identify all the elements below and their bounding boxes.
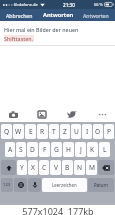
button[interactable]: L	[99, 142, 110, 157]
staticText: Hier mal ein Bilder der neuen	[4, 26, 79, 33]
button[interactable]: H	[63, 142, 74, 157]
button[interactable]: Umschalt	[1, 160, 16, 175]
staticText: Antworten	[43, 11, 74, 19]
staticText: C	[42, 163, 47, 172]
button[interactable]: Foto	[35, 107, 49, 121]
button[interactable]: U	[71, 124, 81, 139]
button[interactable]: J	[75, 142, 86, 157]
button[interactable]: Zahlen	[1, 178, 13, 192]
staticText: V	[54, 163, 58, 172]
staticText: 21:30	[63, 2, 75, 8]
button[interactable]: I	[82, 124, 92, 139]
staticText: Abbrechen	[6, 12, 33, 19]
button[interactable]: Diktieren	[28, 178, 41, 192]
staticText: Z	[63, 127, 67, 136]
button[interactable]: Antworten	[77, 9, 115, 21]
button[interactable]: O	[93, 124, 103, 139]
button[interactable]: Y	[17, 160, 27, 175]
staticText: E	[29, 127, 33, 136]
staticText: J	[80, 145, 82, 154]
staticText: O	[95, 127, 101, 136]
staticText: Return	[94, 182, 109, 188]
staticText: I	[86, 127, 89, 136]
button[interactable]: V	[50, 160, 61, 175]
button[interactable]: N	[74, 160, 85, 175]
staticText: M	[89, 163, 95, 172]
button[interactable]: Twitter	[65, 107, 79, 121]
staticText: 66 %	[94, 2, 103, 7]
staticText: D	[30, 145, 35, 154]
staticText: Leerzeichen	[52, 182, 77, 188]
staticText: W	[15, 127, 22, 136]
staticText: F	[43, 145, 47, 154]
staticText: U	[74, 127, 79, 136]
button[interactable]: B	[62, 160, 73, 175]
button[interactable]: D	[27, 142, 38, 157]
button[interactable]: C	[39, 160, 49, 175]
staticText: 123	[3, 182, 11, 188]
staticText: L	[103, 145, 107, 154]
button[interactable]: G	[51, 142, 62, 157]
staticText: A	[8, 145, 13, 154]
button[interactable]: X	[28, 160, 38, 175]
staticText: P	[107, 127, 111, 136]
staticText: K	[90, 145, 95, 154]
staticText: B	[65, 163, 70, 172]
button[interactable]: W	[13, 124, 24, 139]
button[interactable]: M	[86, 160, 97, 175]
staticText: N	[77, 163, 83, 172]
button[interactable]: Sprache	[14, 178, 27, 192]
staticText: Antworten	[83, 12, 109, 19]
staticText: Vodafone.de	[14, 2, 38, 7]
button[interactable]: Leerzeichen	[42, 178, 87, 192]
button[interactable]: Mehr	[95, 107, 109, 121]
staticText: T	[52, 127, 56, 136]
button[interactable]: T	[49, 124, 59, 139]
staticText: 577x1024 177kb	[22, 205, 94, 215]
button[interactable]: P	[104, 124, 114, 139]
button[interactable]: K	[87, 142, 98, 157]
button[interactable]: Z	[60, 124, 70, 139]
button[interactable]: Q	[1, 124, 12, 139]
staticText: Y	[20, 163, 24, 172]
button[interactable]: A	[5, 142, 15, 157]
staticText: X	[31, 163, 35, 172]
staticText: Shifttasten.	[4, 35, 34, 42]
button[interactable]: Return	[88, 178, 114, 192]
staticText: S	[19, 145, 23, 154]
button[interactable]: Abbrechen	[0, 9, 39, 21]
button[interactable]: E	[25, 124, 36, 139]
staticText: H	[66, 145, 71, 154]
button[interactable]: R	[37, 124, 48, 139]
staticText: R	[40, 127, 45, 136]
button[interactable]: Löschen	[98, 160, 114, 175]
staticText: G	[54, 145, 59, 154]
button[interactable]: F	[39, 142, 50, 157]
button[interactable]: S	[16, 142, 26, 157]
staticText: Q	[4, 127, 10, 136]
button[interactable]: Kamera	[6, 107, 20, 121]
